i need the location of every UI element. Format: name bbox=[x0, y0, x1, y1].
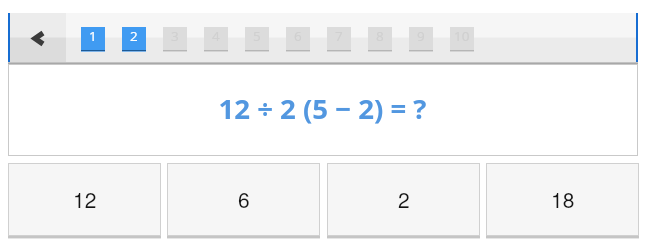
staticText: 3 bbox=[171, 27, 179, 45]
button[interactable]: 9 bbox=[409, 27, 433, 52]
staticText: 8 bbox=[376, 27, 384, 45]
staticText: 2 bbox=[398, 184, 410, 214]
button[interactable]: 18 bbox=[486, 163, 639, 236]
staticText: 4 bbox=[212, 27, 220, 45]
button[interactable]: 1 bbox=[81, 27, 105, 52]
staticText: 7 bbox=[335, 27, 343, 45]
staticText: 10 bbox=[454, 27, 470, 45]
button[interactable]: 4 bbox=[204, 27, 228, 52]
button[interactable]: 12 bbox=[8, 163, 161, 236]
button[interactable]: 3 bbox=[163, 27, 187, 52]
staticText: 9 bbox=[417, 27, 425, 45]
staticText: 2 bbox=[130, 27, 138, 45]
staticText: 18 bbox=[551, 184, 575, 214]
button[interactable]: 5 bbox=[245, 27, 269, 52]
staticText: 5 bbox=[253, 27, 261, 45]
staticText: 12 ÷ 2 (5 − 2) = ? bbox=[218, 89, 427, 127]
button[interactable]: 2 bbox=[122, 27, 146, 52]
button[interactable]: 7 bbox=[327, 27, 351, 52]
button[interactable]: 2 bbox=[327, 163, 480, 236]
staticText: 6 bbox=[294, 27, 302, 45]
button[interactable]: 6 bbox=[167, 163, 320, 236]
staticText: 12 bbox=[73, 184, 97, 214]
button[interactable]: 6 bbox=[286, 27, 310, 52]
staticText: 6 bbox=[238, 184, 250, 214]
button[interactable]: 10 bbox=[450, 27, 474, 52]
button[interactable]: Back bbox=[8, 13, 66, 62]
staticText: 1 bbox=[89, 27, 97, 45]
button[interactable]: 8 bbox=[368, 27, 392, 52]
